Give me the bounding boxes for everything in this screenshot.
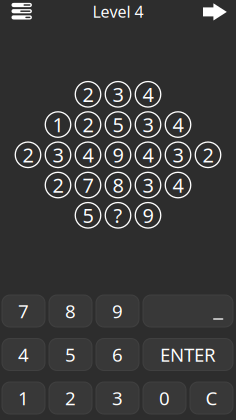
staticText: ENTER (160, 342, 216, 367)
staticText: 3 (142, 172, 153, 198)
button[interactable]: 2 (45, 172, 71, 198)
button[interactable]: 2 (75, 81, 101, 107)
button[interactable]: 7 (2, 295, 45, 327)
staticText: Level 4 (92, 1, 143, 22)
button[interactable]: 7 (75, 172, 101, 198)
button[interactable]: 5 (49, 338, 92, 370)
staticText: 3 (52, 141, 63, 168)
button[interactable]: 3 (135, 112, 161, 137)
staticText: 2 (82, 111, 93, 138)
button[interactable]: 8 (49, 295, 92, 327)
button[interactable]: 1 (45, 112, 71, 137)
staticText: 2 (82, 81, 93, 108)
button[interactable]: C (190, 382, 233, 414)
button[interactable]: 3 (135, 172, 161, 198)
button[interactable]: Answer (143, 295, 233, 327)
staticText: 5 (82, 202, 93, 229)
button[interactable]: 8 (105, 172, 131, 198)
button[interactable]: 4 (2, 338, 45, 370)
staticText: 9 (112, 141, 123, 168)
staticText: 1 (52, 111, 63, 138)
staticText: 7 (82, 172, 93, 198)
button[interactable]: 6 (96, 338, 139, 370)
button[interactable]: 0 (143, 382, 186, 414)
button[interactable]: 4 (135, 81, 161, 107)
staticText: 9 (142, 202, 153, 229)
button[interactable]: 9 (96, 295, 139, 327)
button[interactable]: 4 (75, 142, 101, 168)
staticText: 2 (202, 141, 213, 168)
staticText: 8 (112, 172, 123, 198)
staticText: 4 (82, 141, 93, 168)
button[interactable]: 3 (45, 142, 71, 168)
staticText: 0 (159, 386, 170, 410)
staticText: 9 (112, 299, 123, 323)
button[interactable]: 3 (165, 142, 191, 168)
staticText: 4 (142, 81, 153, 108)
button[interactable]: ? (105, 203, 131, 228)
staticText: 5 (112, 111, 123, 138)
button[interactable]: 2 (49, 382, 92, 414)
button[interactable]: Next level (198, 0, 232, 25)
button[interactable]: 4 (165, 172, 191, 198)
button[interactable]: 2 (195, 142, 221, 168)
button[interactable]: 4 (135, 142, 161, 168)
staticText: 4 (18, 342, 29, 367)
button[interactable]: 2 (15, 142, 41, 168)
staticText: 8 (65, 299, 76, 323)
staticText: 3 (172, 141, 183, 168)
staticText: 4 (172, 111, 183, 138)
staticText: 3 (112, 386, 123, 410)
staticText: 2 (22, 141, 33, 168)
staticText: 4 (172, 172, 183, 198)
button[interactable]: 1 (2, 382, 45, 414)
staticText: 1 (18, 386, 29, 410)
staticText: 4 (142, 141, 153, 168)
staticText: 2 (65, 386, 76, 410)
staticText: C (205, 386, 217, 410)
button[interactable]: 3 (105, 81, 131, 107)
button[interactable]: 2 (75, 112, 101, 137)
staticText: 2 (52, 172, 63, 198)
button[interactable]: 9 (105, 142, 131, 168)
button[interactable]: 5 (75, 203, 101, 228)
staticText: ? (113, 202, 122, 229)
button[interactable]: 4 (165, 112, 191, 137)
button[interactable]: 3 (96, 382, 139, 414)
button[interactable]: Levels (5, 0, 39, 24)
button[interactable]: ENTER (143, 338, 233, 370)
staticText: 3 (112, 81, 123, 108)
staticText: 6 (112, 342, 123, 367)
staticText: 5 (65, 342, 76, 367)
button[interactable]: 9 (135, 203, 161, 228)
staticText: 3 (142, 111, 153, 138)
staticText: 7 (18, 299, 29, 323)
button[interactable]: 5 (105, 112, 131, 137)
